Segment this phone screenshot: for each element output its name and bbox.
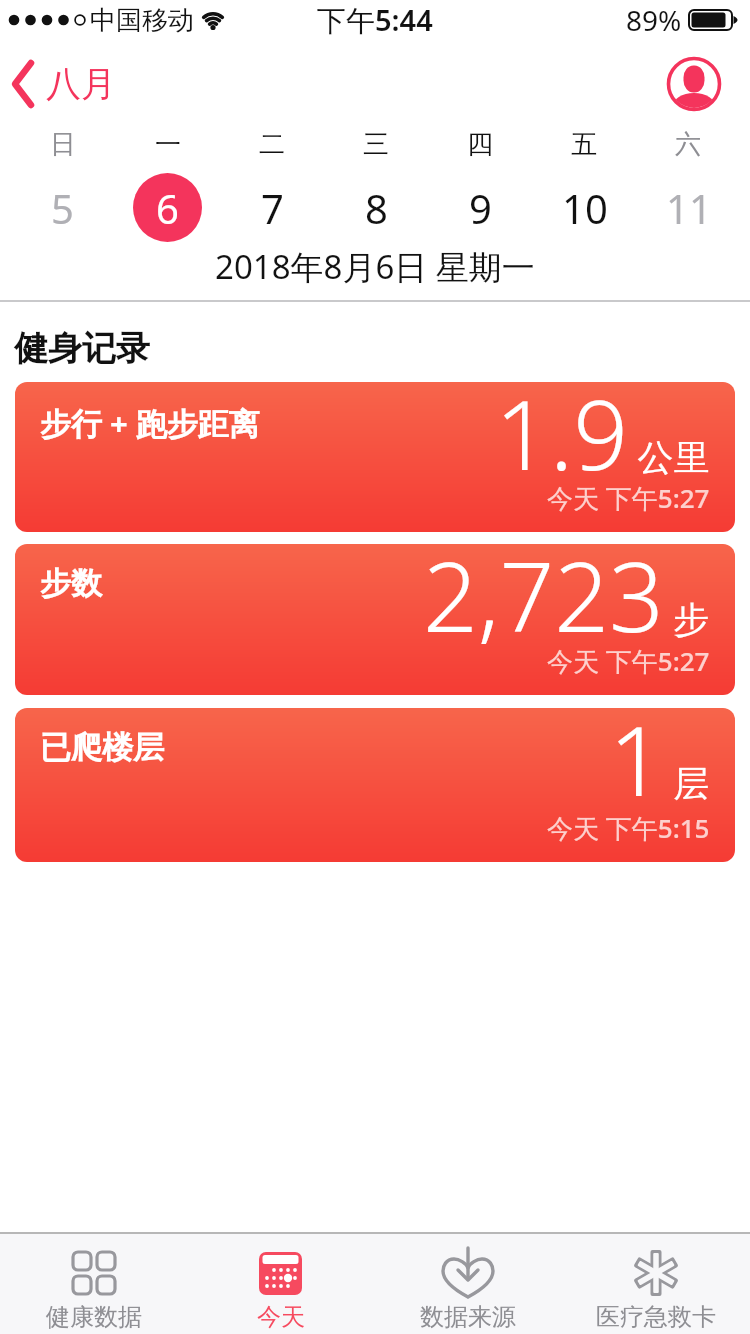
button[interactable]: 健康数据: [0, 1234, 187, 1334]
button[interactable]: 今天: [187, 1234, 374, 1334]
button[interactable]: 八月: [10, 40, 116, 128]
button[interactable]: 8: [343, 174, 410, 241]
staticText: 日: [50, 128, 76, 161]
staticText: 步数: [40, 564, 102, 603]
staticText: 6: [156, 181, 179, 235]
staticText: 医疗急救卡: [596, 1302, 716, 1332]
staticText: 9: [469, 181, 492, 235]
button[interactable]: 7: [239, 174, 306, 241]
staticText: 一: [155, 128, 181, 161]
staticText: 1.9 公里: [495, 382, 710, 498]
staticText: 8: [365, 181, 388, 235]
staticText: 5: [51, 181, 74, 235]
staticText: 健身记录: [14, 327, 150, 370]
staticText: 中国移动: [90, 4, 194, 37]
staticText: 八月: [46, 62, 116, 106]
button[interactable]: 已爬楼层: [15, 708, 735, 862]
button[interactable]: 数据来源: [374, 1234, 562, 1334]
button[interactable]: 9: [447, 174, 514, 241]
staticText: 二: [259, 128, 285, 161]
button[interactable]: [666, 56, 722, 112]
button[interactable]: 11: [655, 174, 722, 241]
staticText: 11: [666, 181, 712, 235]
staticText: 下午5:44: [317, 0, 433, 40]
staticText: 今天: [257, 1302, 305, 1332]
staticText: 健康数据: [46, 1302, 142, 1332]
staticText: 89%: [626, 1, 682, 39]
staticText: 六: [675, 128, 701, 161]
staticText: 2,723 步: [423, 544, 710, 660]
staticText: 今天 下午5:15: [547, 810, 710, 846]
staticText: 今天 下午5:27: [547, 643, 710, 679]
staticText: 已爬楼层: [40, 728, 164, 767]
staticText: 数据来源: [420, 1302, 516, 1332]
staticText: 五: [571, 128, 597, 161]
staticText: 10: [562, 181, 608, 235]
button[interactable]: 步数: [15, 544, 735, 695]
staticText: 1 层: [609, 708, 710, 824]
staticText: 四: [467, 128, 493, 161]
staticText: 7: [261, 181, 284, 235]
staticText: 2018年8月6日 星期一: [215, 244, 535, 288]
button[interactable]: 步行 + 跑步距离: [15, 382, 735, 532]
button[interactable]: 6: [133, 173, 202, 242]
staticText: 步行 + 跑步距离: [40, 402, 260, 444]
button[interactable]: 医疗急救卡: [562, 1234, 750, 1334]
button[interactable]: 10: [551, 174, 618, 241]
staticText: 三: [363, 128, 389, 161]
button[interactable]: 5: [29, 174, 96, 241]
staticText: 今天 下午5:27: [547, 480, 710, 516]
